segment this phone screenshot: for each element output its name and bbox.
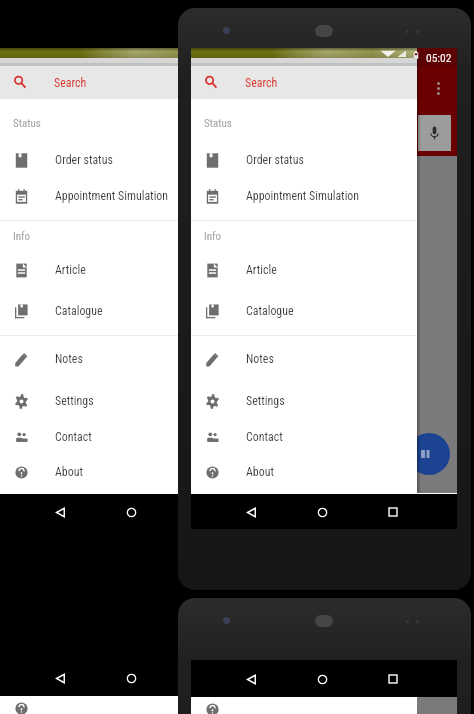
button[interactable]: Article xyxy=(191,252,417,288)
button[interactable]: Recents xyxy=(380,666,406,692)
button[interactable]: Create xyxy=(217,433,259,475)
button[interactable]: Back xyxy=(47,665,73,691)
staticText: Order status xyxy=(55,153,113,167)
button[interactable]: Catalogue xyxy=(191,293,417,329)
button[interactable]: Voice search xyxy=(418,115,451,151)
button[interactable]: Home xyxy=(309,666,335,692)
button[interactable]: Back xyxy=(238,499,264,525)
button[interactable]: About xyxy=(191,454,417,490)
button[interactable]: Home xyxy=(118,665,144,691)
staticText: Contact xyxy=(55,430,92,444)
button[interactable]: About xyxy=(0,454,226,490)
button[interactable]: Order status xyxy=(0,142,226,178)
button[interactable]: Notes xyxy=(0,341,226,377)
staticText: Status xyxy=(204,117,232,130)
staticText: Info xyxy=(13,230,31,243)
button[interactable]: More options xyxy=(431,76,445,100)
button[interactable]: Appointment Simulation xyxy=(0,178,226,214)
button[interactable]: Search xyxy=(191,66,417,99)
staticText: Catalogue xyxy=(55,304,103,318)
staticText: Status xyxy=(13,117,41,130)
staticText: Contact xyxy=(246,430,283,444)
staticText: Notes xyxy=(246,352,274,366)
button[interactable]: Article xyxy=(0,252,226,288)
button[interactable]: Contact xyxy=(191,419,417,455)
staticText: 05:02 xyxy=(426,51,452,64)
button[interactable]: Recents xyxy=(380,499,406,525)
staticText: Info xyxy=(204,230,222,243)
button[interactable]: Order status xyxy=(191,142,417,178)
button[interactable]: Notes xyxy=(191,341,417,377)
button[interactable]: Appointment Simulation xyxy=(191,178,417,214)
button[interactable]: Contact xyxy=(0,419,226,455)
button[interactable]: Home xyxy=(118,499,144,525)
staticText: Catalogue xyxy=(246,304,294,318)
button[interactable]: Back xyxy=(47,499,73,525)
staticText: Search xyxy=(54,76,87,90)
staticText: Settings xyxy=(55,394,94,408)
staticText: Search xyxy=(245,76,278,90)
button[interactable]: Recents xyxy=(177,665,203,691)
button[interactable]: Voice search xyxy=(227,115,260,151)
button[interactable]: Recents xyxy=(189,499,215,525)
button[interactable]: Create xyxy=(408,433,450,475)
staticText: Appointment Simulation xyxy=(246,189,360,203)
staticText: About xyxy=(246,465,274,479)
button[interactable]: More options xyxy=(240,76,254,100)
staticText: Article xyxy=(55,263,86,277)
button[interactable]: Settings xyxy=(0,383,226,419)
staticText: About xyxy=(55,465,83,479)
staticText: Appointment Simulation xyxy=(55,189,169,203)
button[interactable]: Back xyxy=(238,666,264,692)
button[interactable]: Home xyxy=(309,499,335,525)
staticText: Article xyxy=(246,263,277,277)
staticText: Notes xyxy=(55,352,83,366)
staticText: Settings xyxy=(246,394,285,408)
staticText: 05:02 xyxy=(235,51,261,64)
button[interactable]: Catalogue xyxy=(0,293,226,329)
button[interactable]: Settings xyxy=(191,383,417,419)
button[interactable]: Search xyxy=(0,66,226,99)
staticText: Order status xyxy=(246,153,304,167)
